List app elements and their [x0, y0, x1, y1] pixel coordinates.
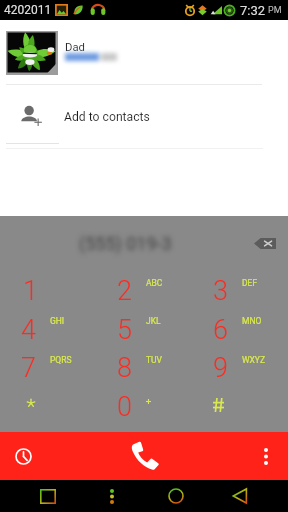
button[interactable] — [192, 350, 288, 389]
staticText: 9 — [213, 352, 228, 384]
staticText: DEF — [242, 278, 258, 288]
button[interactable] — [96, 312, 192, 351]
button[interactable]: Back — [224, 480, 256, 512]
staticText: MNO — [242, 316, 262, 326]
button[interactable] — [192, 389, 288, 428]
staticText: GHI — [50, 316, 65, 326]
button[interactable] — [0, 85, 288, 143]
staticText: JKL — [146, 316, 161, 326]
staticText: 4 — [21, 314, 36, 346]
button[interactable]: More options — [244, 432, 288, 480]
button[interactable]: Call — [46, 432, 244, 480]
staticText: PM — [268, 5, 282, 16]
staticText: 7 — [21, 352, 36, 384]
button[interactable]: Menu — [96, 480, 128, 512]
staticText: 5 — [117, 314, 132, 346]
button[interactable] — [0, 389, 96, 428]
staticText: 0 — [117, 391, 132, 423]
staticText: Dad — [65, 41, 85, 54]
button[interactable] — [0, 24, 288, 84]
staticText: WXYZ — [242, 355, 266, 365]
button[interactable] — [0, 350, 96, 389]
button[interactable] — [96, 389, 192, 428]
button[interactable]: Home — [160, 480, 192, 512]
staticText: Add to contacts — [64, 110, 150, 124]
staticText: 8 — [117, 352, 132, 384]
button[interactable] — [192, 312, 288, 351]
button[interactable] — [96, 350, 192, 389]
button[interactable] — [96, 273, 192, 312]
button[interactable]: Backspace — [246, 228, 284, 258]
button[interactable]: Call history — [0, 432, 46, 480]
staticText: 1 — [23, 275, 38, 307]
staticText: PQRS — [50, 355, 72, 365]
button[interactable]: Recent apps — [32, 480, 64, 512]
staticText: 2 — [117, 275, 132, 307]
button[interactable] — [192, 273, 288, 312]
staticText: (555) 019-3 — [79, 233, 172, 254]
button[interactable] — [0, 273, 96, 312]
staticText: TUV — [146, 355, 162, 365]
staticText: ABC — [146, 278, 163, 288]
staticText: 4202011 — [4, 3, 52, 17]
staticText: 6 — [213, 314, 228, 346]
staticText: 3 — [213, 275, 228, 307]
button[interactable] — [0, 312, 96, 351]
staticText: 7:32 — [240, 3, 266, 18]
